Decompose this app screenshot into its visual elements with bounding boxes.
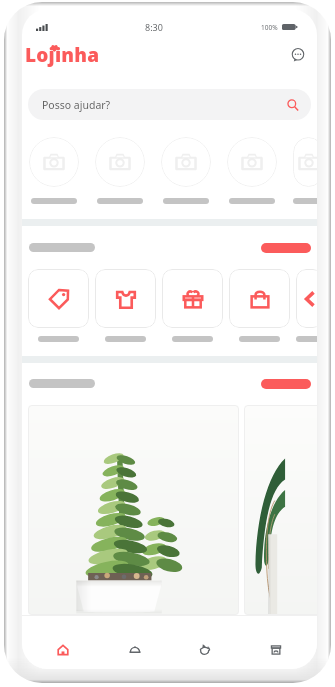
button[interactable]: Home: [47, 637, 79, 663]
staticText: Lojinha: [25, 42, 100, 68]
button[interactable]: Posso ajudar?: [28, 89, 311, 120]
button[interactable]: Story: [95, 137, 145, 187]
staticText: 8:30: [145, 21, 163, 33]
button[interactable]: Category: [296, 269, 317, 328]
button[interactable]: Story: [293, 137, 317, 187]
button[interactable]: Story: [29, 137, 79, 187]
staticText: Posso ajudar?: [42, 98, 111, 112]
button[interactable]: Store: [260, 637, 292, 663]
button[interactable]: Chat: [287, 44, 309, 66]
button[interactable]: Ver mais: [261, 379, 311, 389]
button[interactable]: Product: [28, 405, 239, 615]
button[interactable]: Ver mais: [261, 243, 311, 253]
button[interactable]: Savings: [189, 637, 221, 663]
button[interactable]: Category: [229, 269, 290, 328]
button[interactable]: Category: [95, 269, 156, 328]
button[interactable]: Product: [244, 405, 317, 615]
button[interactable]: Food: [119, 637, 151, 663]
staticText: 100%: [261, 23, 278, 32]
button[interactable]: Category: [28, 269, 89, 328]
button[interactable]: Category: [162, 269, 223, 328]
button[interactable]: Story: [161, 137, 211, 187]
button[interactable]: Story: [227, 137, 277, 187]
